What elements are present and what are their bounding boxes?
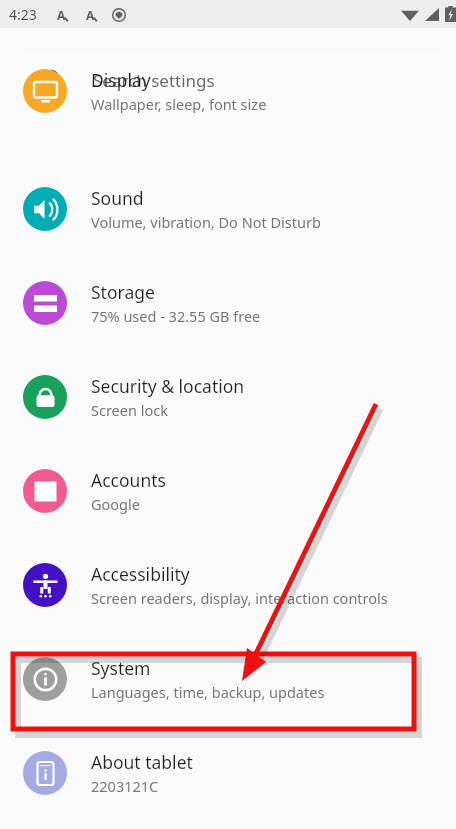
- staticText: A: [57, 7, 66, 22]
- staticText: System: [91, 656, 151, 680]
- staticText: A: [86, 7, 95, 22]
- staticText: Accounts: [91, 468, 166, 492]
- staticText: Storage: [91, 280, 155, 304]
- staticText: Languages, time, backup, updates: [91, 682, 325, 702]
- button[interactable]: About tablet: [0, 726, 456, 820]
- button[interactable]: Accounts: [0, 444, 456, 538]
- staticText: Screen lock: [91, 400, 168, 420]
- button[interactable]: Storage: [0, 256, 456, 350]
- button[interactable]: Search: [17, 52, 440, 109]
- button[interactable]: System: [0, 632, 456, 726]
- staticText: Security & location: [91, 374, 245, 398]
- staticText: Search settings: [93, 69, 215, 92]
- staticText: About tablet: [91, 750, 193, 774]
- staticText: 2203121C: [91, 776, 159, 796]
- staticText: Screen readers, display, interaction con…: [91, 588, 388, 608]
- button[interactable]: Accessibility: [0, 538, 456, 632]
- staticText: Accessibility: [91, 562, 190, 586]
- staticText: Wallpaper, sleep, font size: [91, 94, 267, 113]
- other: Search: [42, 69, 65, 92]
- button[interactable]: Security & location: [0, 350, 456, 444]
- staticText: 75% used - 32.55 GB free: [91, 306, 261, 326]
- button[interactable]: Sound: [0, 162, 456, 256]
- staticText: Google: [91, 494, 140, 514]
- staticText: Display: [91, 68, 151, 92]
- staticText: Sound: [91, 186, 144, 210]
- staticText: Volume, vibration, Do Not Disturb: [91, 212, 321, 232]
- staticText: 4:23: [9, 5, 37, 24]
